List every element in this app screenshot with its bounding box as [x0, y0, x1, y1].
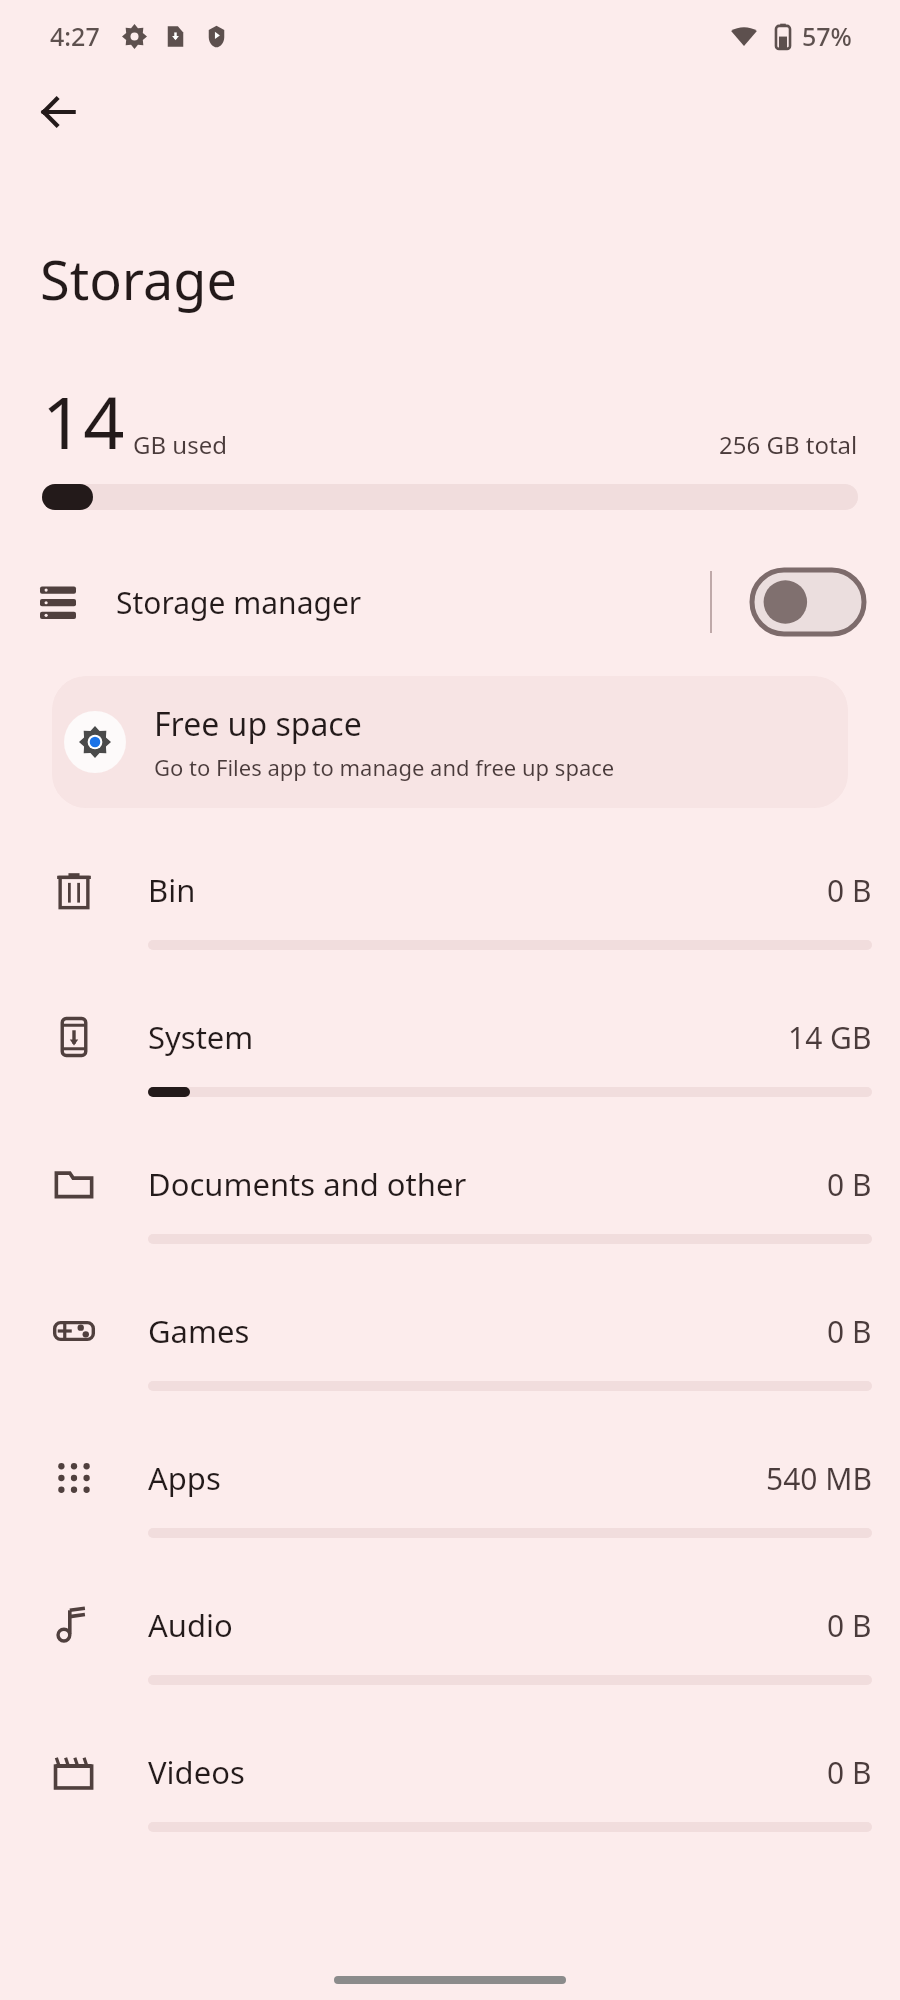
staticText: 540 MB: [766, 1458, 872, 1499]
button[interactable]: Apps: [0, 1428, 900, 1575]
button[interactable]: Storage manager: [0, 554, 900, 650]
staticText: Documents and other: [148, 1163, 827, 1205]
staticText: 0 B: [827, 1164, 872, 1205]
button[interactable]: Videos: [0, 1722, 900, 1869]
staticText: GB used: [133, 428, 227, 461]
staticText: 14: [42, 372, 125, 470]
staticText: Storage manager: [116, 582, 710, 623]
staticText: 57%: [802, 19, 852, 53]
button[interactable]: Games: [0, 1281, 900, 1428]
staticText: Apps: [148, 1457, 766, 1499]
staticText: 0 B: [827, 1752, 872, 1793]
staticText: Videos: [148, 1751, 827, 1793]
staticText: Free up space: [154, 702, 362, 746]
staticText: Audio: [148, 1604, 827, 1646]
staticText: Storage: [40, 242, 237, 316]
button[interactable]: Free up space: [52, 676, 848, 808]
staticText: 0 B: [827, 1311, 872, 1352]
button[interactable]: System: [0, 987, 900, 1134]
staticText: 0 B: [827, 870, 872, 911]
staticText: Bin: [148, 869, 827, 911]
button[interactable]: Audio: [0, 1575, 900, 1722]
staticText: Go to Files app to manage and free up sp…: [154, 752, 615, 782]
staticText: 14 GB: [788, 1017, 872, 1058]
button[interactable]: Documents and other: [0, 1134, 900, 1281]
staticText: 4:27: [50, 19, 100, 53]
staticText: Games: [148, 1310, 827, 1352]
staticText: 0 B: [827, 1605, 872, 1646]
staticText: System: [148, 1016, 788, 1058]
staticText: 256 GB total: [719, 428, 858, 461]
button[interactable]: Storage manager toggle: [750, 568, 866, 636]
button[interactable]: Bin: [0, 840, 900, 987]
button[interactable]: Back: [18, 72, 98, 152]
